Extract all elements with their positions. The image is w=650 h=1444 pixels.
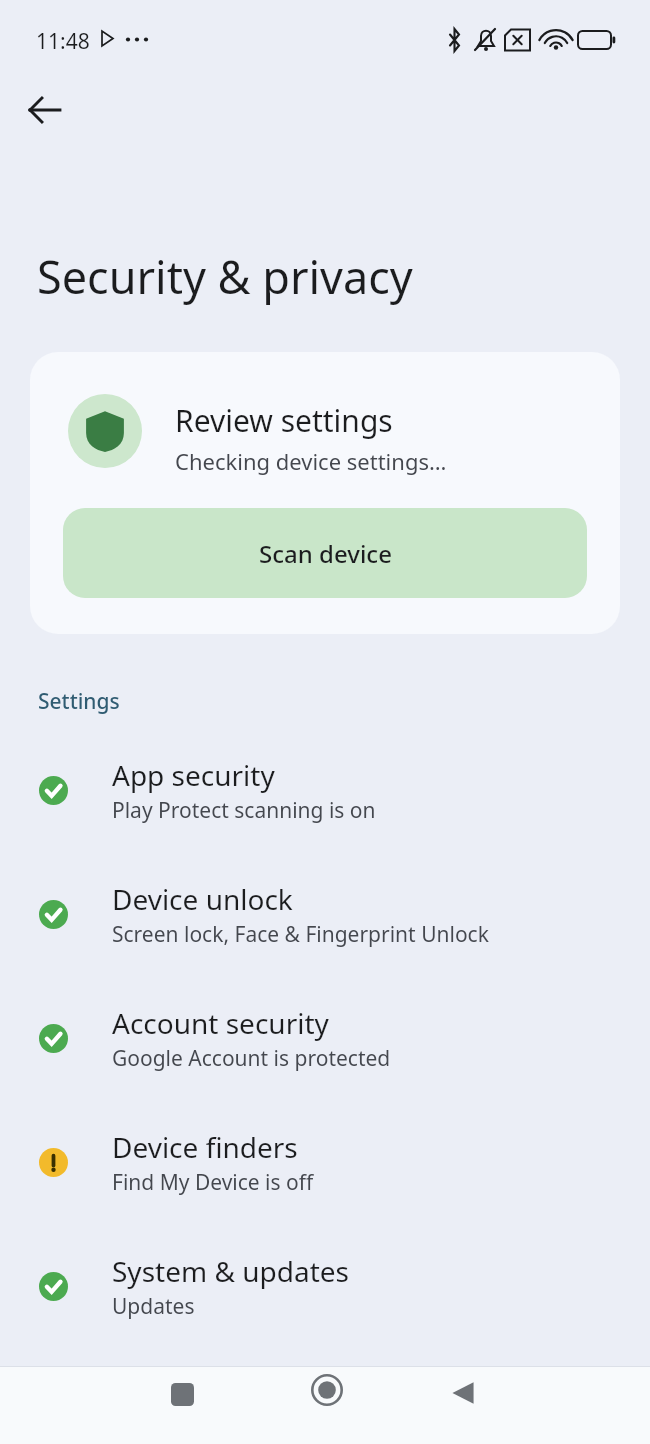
staticText: Google Account is protected bbox=[112, 1044, 391, 1073]
button[interactable]: Device finders bbox=[0, 1107, 650, 1217]
button[interactable]: Account security bbox=[0, 983, 650, 1093]
staticText: Device finders bbox=[112, 1128, 298, 1166]
button[interactable]: Back bbox=[440, 1370, 486, 1416]
button[interactable]: System & updates bbox=[0, 1231, 650, 1341]
staticText: App security bbox=[112, 756, 275, 794]
button[interactable]: Device unlock bbox=[0, 859, 650, 969]
staticText: Screen lock, Face & Fingerprint Unlock bbox=[112, 920, 489, 949]
button[interactable]: Recent apps bbox=[159, 1371, 205, 1417]
staticText: Review settings bbox=[175, 400, 393, 441]
button[interactable]: Back bbox=[13, 78, 77, 142]
button[interactable]: Scan device bbox=[63, 508, 587, 598]
button[interactable]: Review settings bbox=[30, 352, 620, 634]
staticText: Account security bbox=[112, 1004, 329, 1042]
staticText: Checking device settings… bbox=[175, 446, 447, 476]
staticText: System & updates bbox=[112, 1252, 349, 1290]
button[interactable]: Home bbox=[302, 1365, 352, 1415]
staticText: Find My Device is off bbox=[112, 1168, 314, 1197]
staticText: Settings bbox=[38, 687, 120, 716]
staticText: Updates bbox=[112, 1292, 195, 1321]
staticText: Security & privacy bbox=[37, 246, 413, 307]
staticText: Scan device bbox=[259, 537, 392, 570]
button[interactable]: App security bbox=[0, 735, 650, 845]
staticText: Device unlock bbox=[112, 880, 293, 918]
staticText: 11:48 bbox=[36, 27, 90, 56]
staticText: Play Protect scanning is on bbox=[112, 796, 376, 825]
